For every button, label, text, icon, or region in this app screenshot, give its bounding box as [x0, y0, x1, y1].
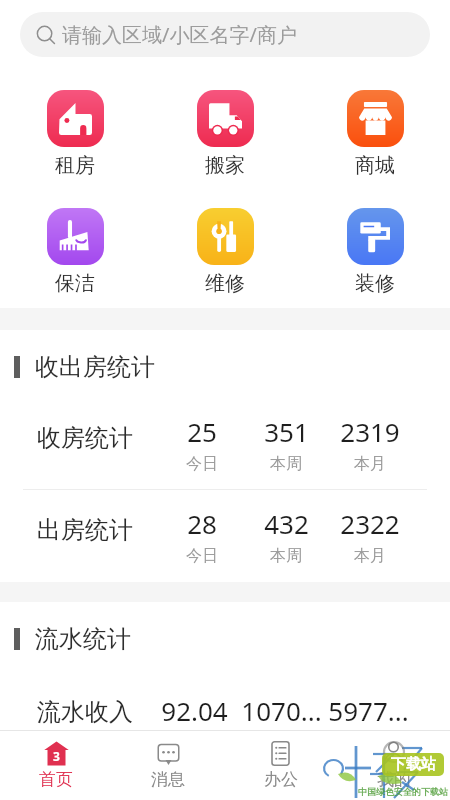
staticText: 下载站: [391, 755, 436, 774]
staticText: 我的: [377, 769, 411, 790]
staticText: 今日: [186, 454, 218, 474]
staticText: 搬家: [205, 153, 245, 178]
staticText: 流水收入: [37, 697, 133, 727]
button[interactable]: 我的: [337, 731, 450, 800]
staticText: 首页: [39, 769, 73, 790]
staticText: 25: [187, 414, 217, 449]
button[interactable]: 办公: [224, 731, 337, 800]
staticText: 1070...: [241, 693, 322, 728]
button[interactable]: 维修: [150, 208, 300, 296]
staticText: 本周: [270, 454, 302, 474]
staticText: 收出房统计: [35, 352, 155, 382]
staticText: 92.04: [161, 693, 228, 728]
button[interactable]: 流水收入: [0, 670, 450, 761]
button[interactable]: 装修: [300, 208, 450, 296]
button[interactable]: 请输入区域/小区名字/商户: [20, 12, 430, 57]
button[interactable]: 收房统计: [0, 398, 450, 489]
button[interactable]: 出房统计: [0, 490, 450, 581]
staticText: 本月: [354, 454, 386, 474]
staticText: 2319: [340, 414, 400, 449]
staticText: 保洁: [55, 271, 95, 296]
staticText: 收房统计: [37, 423, 133, 453]
button[interactable]: 首页: [0, 731, 112, 800]
staticText: 本周: [270, 546, 302, 566]
staticText: 432: [264, 506, 309, 541]
staticText: 本月: [354, 546, 386, 566]
staticText: 流水统计: [35, 624, 131, 654]
staticText: 28: [187, 506, 217, 541]
staticText: 中国绿色安全的下载站: [358, 786, 448, 797]
staticText: 2322: [340, 506, 400, 541]
staticText: 商城: [355, 153, 395, 178]
staticText: 今日: [186, 546, 218, 566]
button[interactable]: 保洁: [0, 208, 150, 296]
staticText: 3: [53, 748, 60, 764]
staticText: 维修: [205, 271, 245, 296]
staticText: 装修: [355, 271, 395, 296]
staticText: 出房统计: [37, 515, 133, 545]
staticText: 办公: [264, 769, 298, 790]
button[interactable]: 租房: [0, 90, 150, 178]
staticText: 租房: [55, 153, 95, 178]
staticText: 请输入区域/小区名字/商户: [62, 21, 297, 48]
staticText: 消息: [151, 769, 185, 790]
button[interactable]: 商城: [300, 90, 450, 178]
staticText: 351: [264, 414, 309, 449]
staticText: 5977...: [328, 693, 409, 728]
button[interactable]: 搬家: [150, 90, 300, 178]
button[interactable]: 消息: [112, 731, 224, 800]
